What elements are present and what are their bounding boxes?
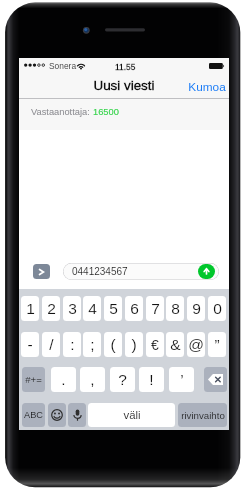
button[interactable]: Send message — [198, 264, 215, 279]
staticText: : — [70, 336, 75, 353]
button[interactable]: , — [80, 367, 105, 392]
button[interactable]: 6 — [125, 296, 143, 321]
staticText: 3 — [68, 300, 77, 317]
staticText: ’ — [180, 371, 184, 388]
button[interactable]: 9 — [187, 296, 205, 321]
staticText: 11.55 — [115, 62, 136, 71]
button[interactable]: 8 — [166, 296, 184, 321]
button[interactable]: & — [166, 332, 184, 357]
staticText: Kumoa — [188, 80, 226, 93]
staticText: . — [61, 371, 66, 388]
button[interactable]: Uusi viesti — [89, 78, 159, 93]
button[interactable]: ; — [83, 332, 101, 357]
button[interactable]: 4 — [83, 296, 101, 321]
button[interactable]: ? — [110, 367, 135, 392]
button[interactable]: 2 — [42, 296, 60, 321]
staticText: 4 — [88, 300, 97, 317]
staticText: / — [49, 336, 54, 353]
button[interactable]: rivinvaihto — [178, 403, 227, 427]
staticText: ( — [110, 336, 116, 353]
button[interactable]: : — [63, 332, 81, 357]
staticText: ” — [214, 336, 220, 353]
button[interactable]: / — [42, 332, 60, 357]
button[interactable]: #+= — [22, 367, 45, 392]
button[interactable]: 3 — [63, 296, 81, 321]
staticText: Uusi viesti — [93, 78, 155, 93]
button[interactable]: 0441234567 — [63, 263, 219, 280]
button[interactable]: 1 — [21, 296, 39, 321]
staticText: ; — [90, 336, 95, 353]
staticText: € — [151, 337, 159, 353]
staticText: & — [170, 336, 181, 353]
staticText: ! — [149, 371, 154, 388]
staticText: 7 — [151, 300, 160, 317]
button[interactable]: ! — [139, 367, 164, 392]
button[interactable]: Expand options — [33, 264, 50, 279]
staticText: ABC — [24, 410, 43, 420]
staticText: #+= — [25, 374, 42, 385]
button[interactable]: ’ — [169, 367, 194, 392]
staticText: 6 — [130, 300, 139, 317]
button[interactable]: 7 — [146, 296, 164, 321]
button[interactable]: 5 — [104, 296, 122, 321]
button[interactable]: - — [21, 332, 39, 357]
button[interactable]: Emoji keyboard — [48, 403, 66, 427]
staticText: väli — [123, 409, 141, 422]
staticText: 8 — [171, 300, 180, 317]
staticText: - — [27, 336, 33, 353]
staticText: 16500 — [93, 107, 119, 117]
staticText: ) — [131, 336, 137, 353]
button[interactable]: € — [146, 332, 164, 357]
button[interactable]: Kumoa — [187, 75, 227, 97]
button[interactable]: ) — [125, 332, 143, 357]
staticText: rivinvaihto — [181, 410, 225, 421]
button[interactable]: 0 — [208, 296, 226, 321]
button[interactable]: Vastaanottaja: — [19, 99, 229, 130]
staticText: 1 — [26, 300, 35, 317]
button[interactable]: . — [51, 367, 76, 392]
staticText: 0441234567 — [72, 266, 128, 277]
staticText: 5 — [109, 300, 118, 317]
button[interactable]: ABC — [22, 403, 45, 427]
button[interactable]: ( — [104, 332, 122, 357]
button[interactable]: väli — [88, 403, 175, 427]
staticText: , — [90, 371, 95, 388]
staticText: ? — [118, 371, 127, 388]
button[interactable]: Dictation — [68, 403, 86, 427]
staticText: 0 — [213, 300, 222, 317]
staticText: 2 — [47, 300, 56, 317]
staticText: Vastaanottaja: — [31, 107, 93, 117]
button[interactable]: Backspace — [204, 367, 227, 392]
staticText: 9 — [192, 300, 201, 317]
button[interactable]: @ — [187, 332, 205, 357]
staticText: @ — [188, 336, 204, 353]
button[interactable]: ” — [208, 332, 226, 357]
staticText: Sonera — [49, 61, 77, 70]
